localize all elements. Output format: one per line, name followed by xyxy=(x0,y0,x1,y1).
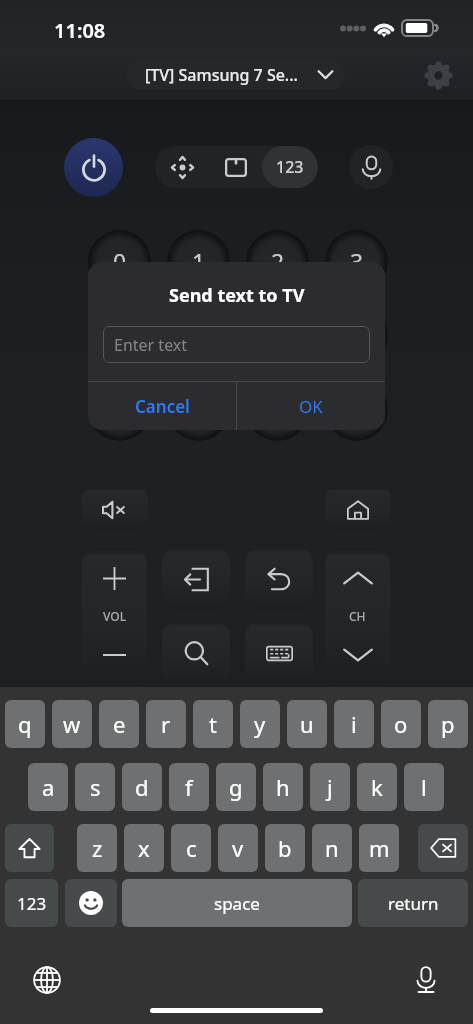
button[interactable]: Search xyxy=(162,622,230,685)
button[interactable]: n xyxy=(312,824,352,872)
button[interactable]: 8 xyxy=(88,378,151,441)
button[interactable]: i xyxy=(334,700,374,748)
button[interactable]: return xyxy=(358,879,468,927)
button[interactable]: f xyxy=(169,763,209,811)
button[interactable]: Voice search xyxy=(349,145,393,189)
button[interactable]: Dictation xyxy=(408,962,444,998)
button[interactable]: Change keyboard language xyxy=(29,962,65,998)
button[interactable]: s xyxy=(75,763,115,811)
staticText: z xyxy=(92,833,103,863)
button[interactable]: Home xyxy=(325,488,391,531)
button[interactable] xyxy=(246,378,309,441)
button[interactable]: d xyxy=(122,763,162,811)
staticText: q xyxy=(18,709,32,739)
button[interactable]: 7 xyxy=(325,304,388,367)
button[interactable]: Screen xyxy=(210,146,262,188)
button[interactable]: Back xyxy=(245,548,313,611)
staticText: u xyxy=(300,709,314,739)
staticText: k xyxy=(371,772,383,802)
staticText: 6 xyxy=(271,320,285,351)
button[interactable]: c xyxy=(171,824,211,872)
button[interactable]: j xyxy=(310,763,350,811)
button[interactable]: 3 xyxy=(325,230,388,293)
button[interactable]: b xyxy=(265,824,305,872)
button[interactable]: h xyxy=(263,763,303,811)
button[interactable]: l xyxy=(404,763,444,811)
staticText: OK xyxy=(299,395,323,418)
button[interactable]: Volume up xyxy=(82,548,147,608)
button[interactable] xyxy=(325,378,388,441)
button[interactable]: q xyxy=(5,700,45,748)
staticText: space xyxy=(214,892,260,915)
button[interactable]: Settings xyxy=(421,58,455,92)
staticText: 0 xyxy=(113,246,127,277)
button[interactable]: Shift xyxy=(5,824,54,872)
button[interactable]: 123 xyxy=(262,146,318,188)
staticText: 2 xyxy=(271,246,285,277)
button[interactable]: r xyxy=(146,700,186,748)
button[interactable]: Enter text xyxy=(103,326,370,363)
staticText: c xyxy=(186,833,197,863)
button[interactable]: z xyxy=(77,824,117,872)
button[interactable]: OK xyxy=(237,382,385,430)
staticText: 3 xyxy=(350,246,364,277)
staticText: g xyxy=(229,772,243,802)
staticText: Send text to TV xyxy=(169,283,305,308)
staticText: 5 xyxy=(192,320,206,351)
button[interactable]: Keyboard xyxy=(245,622,313,685)
staticText: j xyxy=(327,772,333,802)
button[interactable]: Power xyxy=(64,138,123,197)
staticText: b xyxy=(278,833,292,863)
button[interactable]: o xyxy=(381,700,421,748)
button[interactable]: Volume down xyxy=(82,624,147,685)
button[interactable]: w xyxy=(52,700,92,748)
button[interactable]: 2 xyxy=(246,230,309,293)
button[interactable]: 123 xyxy=(5,879,58,927)
staticText: t xyxy=(209,709,217,739)
staticText: 11:08 xyxy=(54,17,106,44)
button[interactable]: 6 xyxy=(246,304,309,367)
staticText: 7 xyxy=(350,320,364,351)
button[interactable]: m xyxy=(359,824,399,872)
button[interactable]: space xyxy=(122,879,352,927)
staticText: [TV] Samsung 7 Se... xyxy=(145,64,298,86)
staticText: m xyxy=(369,833,390,863)
button[interactable]: e xyxy=(99,700,139,748)
button[interactable]: t xyxy=(193,700,233,748)
button[interactable]: x xyxy=(124,824,164,872)
button[interactable]: Cancel xyxy=(88,382,236,430)
staticText: h xyxy=(276,772,290,802)
button[interactable]: 5 xyxy=(167,304,230,367)
staticText: o xyxy=(394,709,408,739)
button[interactable]: y xyxy=(240,700,280,748)
button[interactable]: D-pad xyxy=(155,146,210,188)
staticText: i xyxy=(351,709,357,739)
button[interactable]: [TV] Samsung 7 Se... xyxy=(126,59,345,90)
staticText: 4 xyxy=(113,320,127,351)
staticText: Enter text xyxy=(114,334,188,356)
staticText: x xyxy=(138,833,150,863)
button[interactable]: Backspace xyxy=(418,824,468,872)
button[interactable]: Channel up xyxy=(325,548,390,608)
staticText: VOL xyxy=(103,608,127,624)
button[interactable]: 0 xyxy=(88,230,151,293)
button[interactable]: a xyxy=(28,763,68,811)
button[interactable]: Exit xyxy=(162,548,230,611)
button[interactable]: Mute xyxy=(82,488,148,531)
button[interactable]: u xyxy=(287,700,327,748)
button[interactable]: 4 xyxy=(88,304,151,367)
button[interactable]: p xyxy=(428,700,468,748)
staticText: p xyxy=(441,709,455,739)
button[interactable]: Emoji xyxy=(65,879,117,927)
staticText: w xyxy=(63,709,81,739)
staticText: 1 xyxy=(192,246,206,277)
button[interactable]: 9 xyxy=(167,378,230,441)
button[interactable]: v xyxy=(218,824,258,872)
button[interactable]: Channel down xyxy=(325,624,390,685)
staticText: return xyxy=(388,892,439,915)
staticText: CH xyxy=(349,608,366,624)
button[interactable]: k xyxy=(357,763,397,811)
button[interactable]: 1 xyxy=(167,230,230,293)
button[interactable]: g xyxy=(216,763,256,811)
